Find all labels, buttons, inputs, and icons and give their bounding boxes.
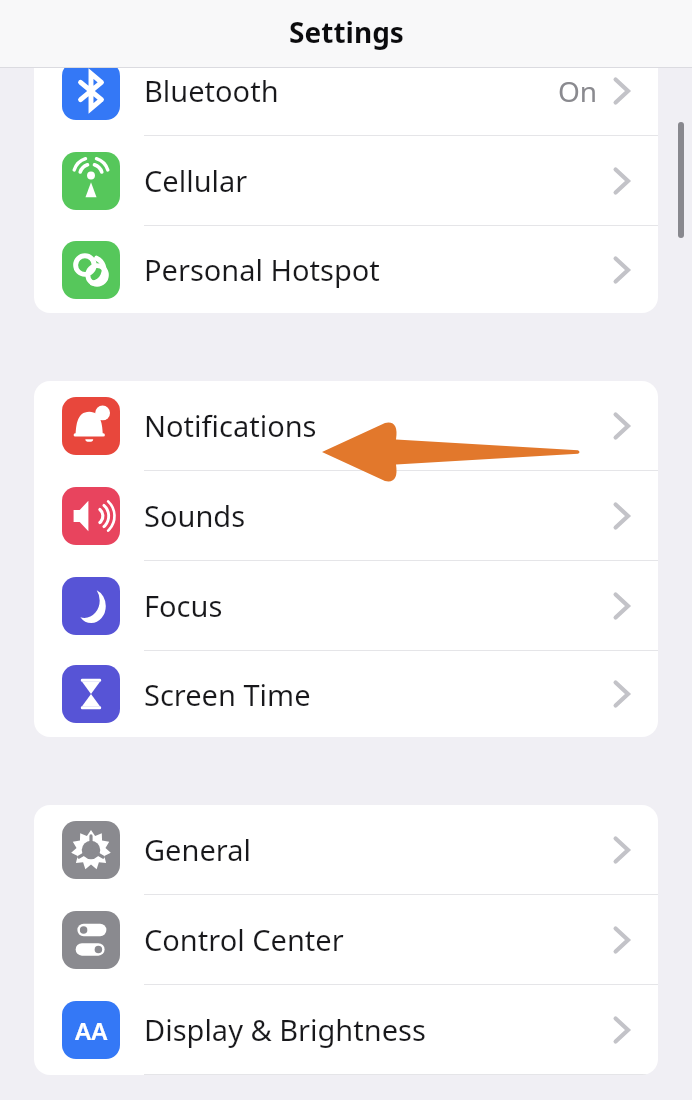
staticText: Notifications bbox=[144, 406, 317, 445]
button[interactable]: Personal Hotspot bbox=[34, 226, 658, 313]
staticText: Focus bbox=[144, 586, 223, 625]
staticText: On bbox=[558, 72, 598, 110]
staticText: General bbox=[144, 830, 251, 869]
staticText: Settings bbox=[289, 13, 404, 51]
staticText: Control Center bbox=[144, 920, 344, 959]
button[interactable]: Bluetooth bbox=[34, 46, 658, 135]
button[interactable]: Cellular bbox=[34, 136, 658, 225]
staticText: AA bbox=[75, 1014, 108, 1047]
staticText: Display & Brightness bbox=[144, 1010, 426, 1049]
button[interactable]: Sounds bbox=[34, 471, 658, 560]
staticText: Bluetooth bbox=[144, 71, 279, 110]
staticText: Cellular bbox=[144, 161, 248, 200]
staticText: Personal Hotspot bbox=[144, 250, 380, 289]
button[interactable]: Focus bbox=[34, 561, 658, 650]
staticText: Screen Time bbox=[144, 675, 311, 714]
button[interactable]: AA bbox=[34, 985, 658, 1074]
button[interactable]: Notifications bbox=[34, 381, 658, 470]
button[interactable]: General bbox=[34, 805, 658, 894]
button[interactable]: Screen Time bbox=[34, 651, 658, 737]
button[interactable]: Control Center bbox=[34, 895, 658, 984]
staticText: Sounds bbox=[144, 496, 246, 535]
